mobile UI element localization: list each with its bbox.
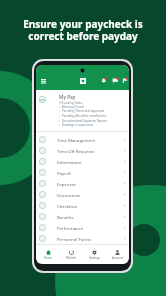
staticText: 5 Pending Tasks	[59, 101, 83, 105]
staticText: Ensure your paycheck is correct before p…	[0, 17, 166, 43]
button[interactable]: Refresh	[60, 245, 83, 264]
staticText: My Pay	[59, 94, 76, 101]
staticText: Settings	[89, 256, 100, 260]
button[interactable]: Performance	[36, 222, 129, 233]
staticText: Benefits	[57, 214, 74, 220]
staticText: Information	[57, 159, 82, 165]
staticText: › Missing Punch	[59, 104, 85, 108]
staticText: › Unsubmitted Expense Report	[59, 118, 108, 122]
staticText: Payroll	[57, 170, 71, 176]
staticText: › Pending Benefits enrollment	[59, 113, 106, 117]
staticText: Personnel Forms	[57, 236, 92, 242]
button[interactable]: App logo	[79, 77, 87, 85]
staticText: Account	[112, 256, 123, 260]
staticText: › Develop a superviso	[59, 122, 93, 126]
staticText: › Pending Timecard approval	[59, 108, 105, 112]
button[interactable]: Settings	[83, 245, 106, 264]
staticText: Refresh	[66, 256, 77, 260]
button[interactable]: Time-Off Requests	[36, 145, 129, 156]
button[interactable]: Messages	[112, 76, 121, 85]
button[interactable]: Payroll	[36, 167, 129, 178]
staticText: Home	[44, 256, 53, 260]
button[interactable]: Time Management	[36, 134, 129, 145]
button[interactable]: Account	[106, 245, 129, 264]
button[interactable]: Alerts	[122, 76, 129, 85]
staticText: Time Management	[57, 137, 96, 143]
button[interactable]: Information	[36, 156, 129, 167]
staticText: Time-Off Requests	[57, 148, 95, 154]
staticText: Performance	[57, 225, 84, 231]
staticText: Documents	[57, 192, 81, 198]
button[interactable]: My Pay	[36, 90, 129, 131]
button[interactable]: Checklists	[36, 200, 129, 211]
button[interactable]: Documents	[36, 189, 129, 200]
staticText: Expenses	[57, 181, 76, 187]
button[interactable]: Benefits	[36, 211, 129, 222]
staticText: Checklists	[57, 203, 78, 209]
button[interactable]: Expenses	[36, 178, 129, 189]
button[interactable]: Notifications	[101, 76, 110, 85]
button[interactable]: Home	[36, 245, 60, 264]
button[interactable]: Menu	[39, 77, 48, 84]
button[interactable]: Personnel Forms	[36, 233, 129, 244]
